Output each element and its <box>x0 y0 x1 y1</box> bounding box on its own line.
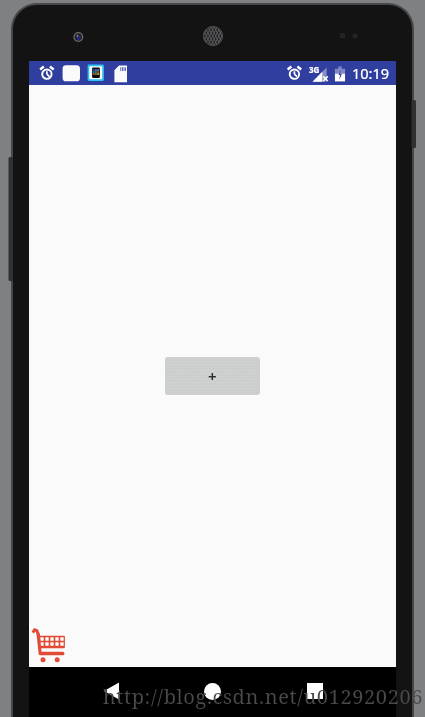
button[interactable]: Shopping cart <box>31 628 67 664</box>
button[interactable]: Recent apps <box>307 683 323 699</box>
staticText: 3G <box>309 64 320 75</box>
button[interactable]: Back <box>104 682 119 700</box>
staticText: 10:19 <box>352 63 390 83</box>
button[interactable]: Home <box>204 683 221 700</box>
staticText: http://blog.csdn.net/u012920206 <box>103 683 424 710</box>
staticText: + <box>208 366 217 386</box>
button[interactable]: + <box>165 357 260 395</box>
